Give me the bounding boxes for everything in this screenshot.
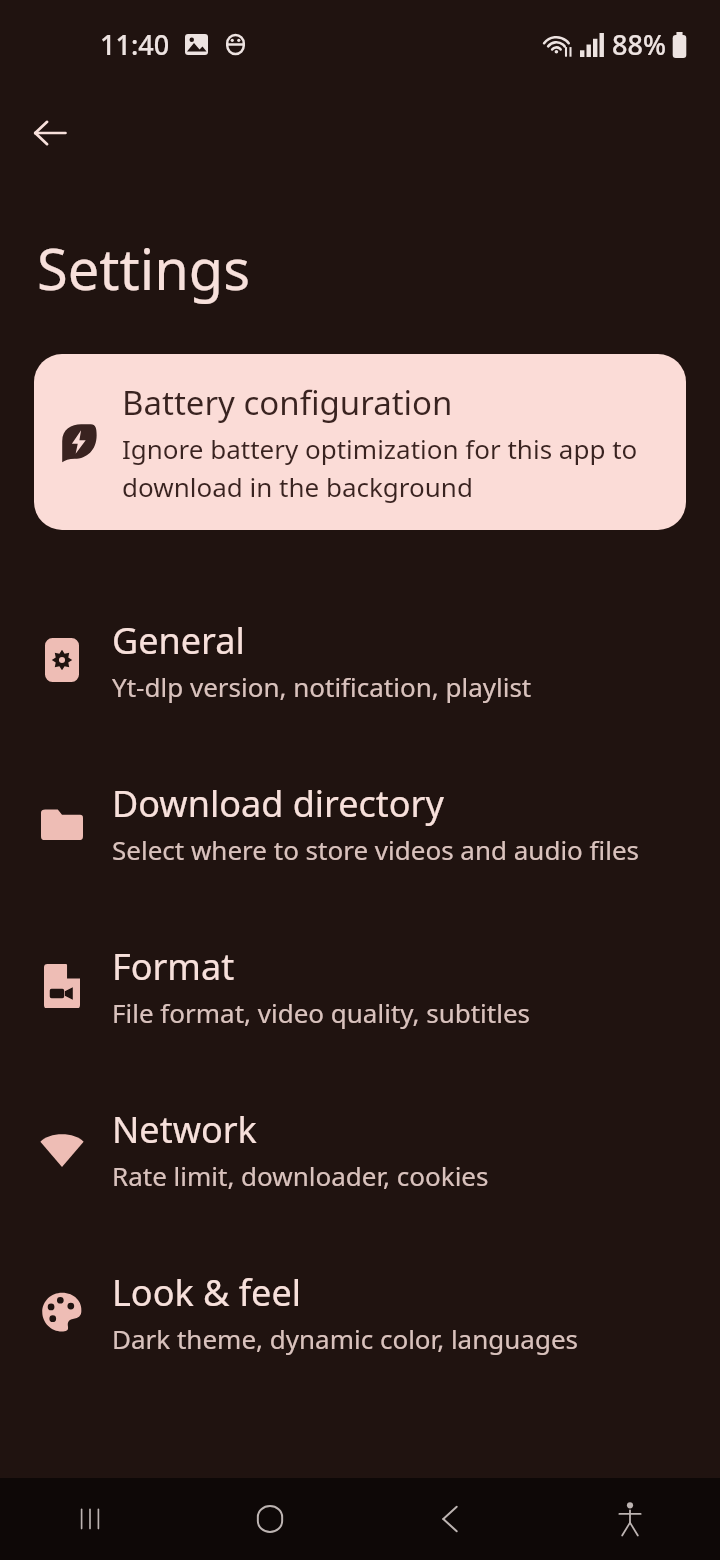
button[interactable]: Back <box>360 1478 540 1560</box>
staticText: Rate limit, downloader, cookies <box>112 1158 489 1193</box>
staticText: Battery configuration <box>122 380 453 425</box>
staticText: Format <box>112 942 235 991</box>
staticText: 11:40 <box>100 26 170 63</box>
button[interactable]: Format <box>0 904 720 1067</box>
staticText: General <box>112 616 245 665</box>
button[interactable]: Look & feel <box>0 1230 720 1393</box>
button[interactable]: Home <box>180 1478 360 1560</box>
staticText: Download directory <box>112 779 444 828</box>
staticText: Select where to store videos and audio f… <box>112 832 640 867</box>
staticText: Look & feel <box>112 1268 302 1317</box>
staticText: Ignore battery optimization for this app… <box>122 431 660 504</box>
button[interactable]: Battery configuration <box>34 354 686 530</box>
button[interactable]: General <box>0 578 720 741</box>
staticText: File format, video quality, subtitles <box>112 995 531 1030</box>
button[interactable]: Back <box>18 101 82 165</box>
button[interactable]: Download directory <box>0 741 720 904</box>
staticText: Settings <box>37 230 251 306</box>
button[interactable]: Recents <box>0 1478 180 1560</box>
staticText: Dark theme, dynamic color, languages <box>112 1321 578 1356</box>
button[interactable]: Network <box>0 1067 720 1230</box>
staticText: 88% <box>612 26 666 63</box>
staticText: Network <box>112 1105 257 1154</box>
staticText: Yt-dlp version, notification, playlist <box>112 669 532 704</box>
button[interactable]: Accessibility <box>540 1478 720 1560</box>
